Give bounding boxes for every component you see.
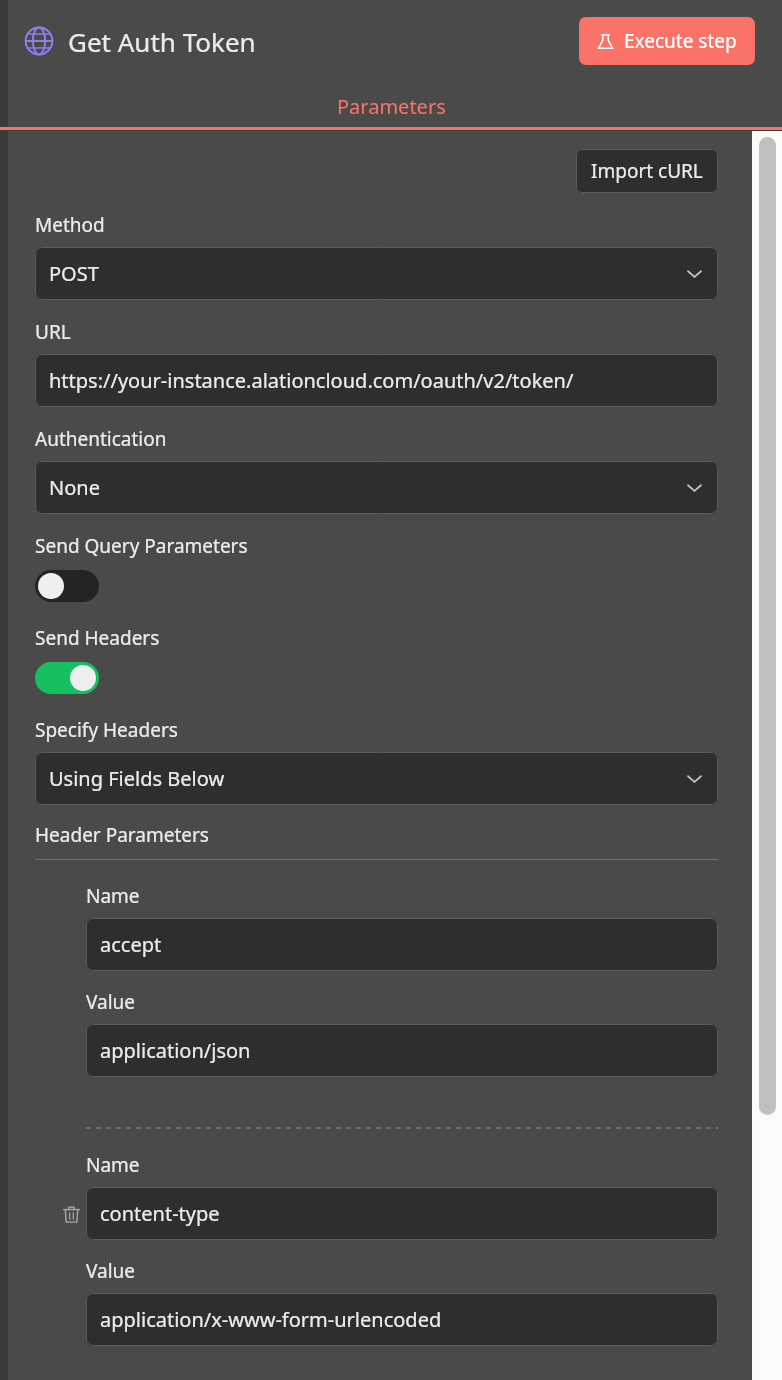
staticText: Parameters <box>337 93 446 120</box>
button[interactable]: POST <box>35 247 718 300</box>
staticText: Import cURL <box>591 158 703 184</box>
staticText: accept <box>100 931 162 958</box>
staticText: Method <box>35 212 105 238</box>
button[interactable]: https://your-instance.alationcloud.com/o… <box>35 354 718 407</box>
button[interactable]: application/json <box>86 1024 718 1077</box>
button[interactable]: Delete header parameter <box>56 1199 86 1229</box>
staticText: Specify Headers <box>35 717 178 743</box>
staticText: None <box>49 474 100 501</box>
staticText: Value <box>86 989 136 1015</box>
button[interactable]: None <box>35 461 718 514</box>
button[interactable]: application/x-www-form-urlencoded <box>86 1293 718 1346</box>
button[interactable]: accept <box>86 918 718 971</box>
staticText: content-type <box>100 1200 220 1227</box>
button[interactable]: Toggle off <box>35 570 99 602</box>
button[interactable]: Import cURL <box>576 149 718 193</box>
staticText: Authentication <box>35 426 167 452</box>
staticText: Value <box>86 1258 136 1284</box>
staticText: https://your-instance.alationcloud.com/o… <box>49 367 574 394</box>
staticText: Execute step <box>624 28 737 54</box>
staticText: Send Query Parameters <box>35 533 248 559</box>
button[interactable]: Toggle on <box>35 662 99 694</box>
staticText: POST <box>49 260 99 287</box>
staticText: URL <box>35 319 71 345</box>
staticText: Header Parameters <box>35 822 209 848</box>
button[interactable]: Execute step <box>579 17 755 65</box>
button[interactable]: Parameters <box>0 82 782 130</box>
staticText: application/x-www-form-urlencoded <box>100 1306 442 1333</box>
staticText: Using Fields Below <box>49 765 225 792</box>
staticText: Get Auth Token <box>68 24 256 59</box>
staticText: Send Headers <box>35 625 160 651</box>
button[interactable]: content-type <box>86 1187 718 1240</box>
button[interactable]: Using Fields Below <box>35 752 718 805</box>
staticText: application/json <box>100 1037 251 1064</box>
staticText: Name <box>86 883 140 909</box>
staticText: Name <box>86 1152 140 1178</box>
